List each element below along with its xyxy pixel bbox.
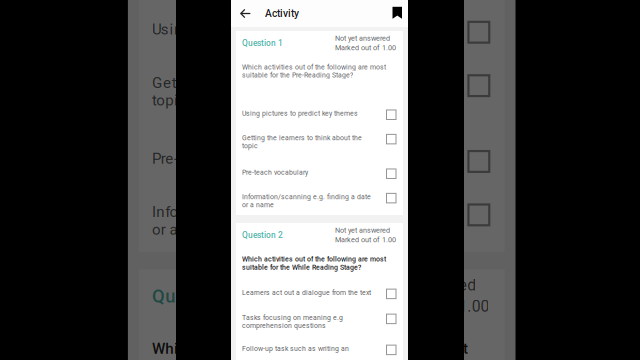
staticText: Question 2 [139, 11, 180, 21]
staticText: Using pictures to predict key themes [242, 109, 358, 117]
staticText: Activity [265, 7, 299, 19]
button[interactable]: Follow-up task such as writing an [133, 119, 300, 143]
button[interactable]: Tasks focusing on meaning e.g comprehens… [133, 88, 300, 119]
staticText: Marked out of 1.00 [335, 44, 396, 52]
staticText: Question 1 [242, 38, 283, 48]
button[interactable]: Getting the learners to think about the … [236, 128, 403, 162]
button[interactable]: Back [231, 0, 256, 27]
staticText: Not yet answered [335, 226, 390, 234]
staticText: Not yet answered [335, 34, 390, 42]
button[interactable]: Learners act out a dialogue from the tex… [133, 63, 300, 88]
staticText: Marked out of 1.00 [232, 17, 293, 25]
staticText: Learners act out a dialogue from the tex… [139, 69, 268, 77]
staticText: Which activities out of the following ar… [242, 63, 386, 79]
staticText: Which activities out of the following ar… [242, 255, 386, 271]
staticText: Follow-up task such as writing an [139, 125, 246, 133]
staticText: Follow-up task such as writing an [242, 344, 349, 352]
staticText: Information/scanning e.g. finding a date… [242, 193, 371, 209]
button[interactable]: Using pictures to predict key themes [236, 103, 403, 128]
staticText: Tasks focusing on meaning e.g comprehens… [242, 313, 343, 330]
staticText: Tasks focusing on meaning e.g comprehens… [139, 94, 240, 111]
staticText: Question 2 [242, 230, 283, 240]
button[interactable]: Pre-teach vocabulary [236, 162, 403, 187]
button[interactable]: Bookmark [384, 0, 408, 27]
staticText: Not yet answered [232, 7, 287, 15]
staticText: Marked out of 1.00 [335, 236, 396, 244]
button[interactable]: Information/scanning e.g. finding a date… [236, 187, 403, 211]
button[interactable]: Follow-up task such as writing an [236, 338, 403, 360]
staticText: Pre-teach vocabulary [242, 168, 308, 176]
button[interactable]: Tasks focusing on meaning e.g comprehens… [236, 307, 403, 338]
staticText: Learners act out a dialogue from the tex… [242, 288, 371, 296]
button[interactable]: Learners act out a dialogue from the tex… [236, 282, 403, 307]
staticText: Getting the learners to think about the … [242, 134, 362, 150]
staticText: Which activities out of the following ar… [139, 36, 283, 52]
